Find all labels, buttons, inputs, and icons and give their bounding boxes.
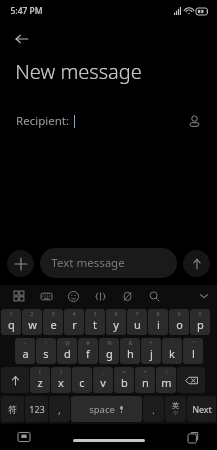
staticText: k bbox=[169, 346, 175, 361]
staticText: . bbox=[152, 402, 155, 417]
staticText: % bbox=[107, 339, 112, 346]
button[interactable]: space bbox=[71, 396, 142, 422]
button[interactable]: Choose contact bbox=[183, 110, 205, 132]
staticText: c bbox=[79, 375, 85, 390]
button[interactable]: Keyboard layout bbox=[33, 285, 60, 307]
staticText: , bbox=[58, 402, 61, 417]
staticText: 4 bbox=[72, 310, 76, 317]
button[interactable]: _ bbox=[93, 367, 113, 393]
button[interactable]: ! bbox=[36, 338, 56, 364]
staticText: 123 bbox=[29, 403, 45, 415]
staticText: 8 bbox=[156, 310, 160, 317]
staticText: 1 bbox=[9, 310, 13, 317]
button[interactable]: 符 bbox=[1, 396, 24, 422]
button[interactable]: 123 bbox=[25, 396, 48, 422]
button[interactable]: ( bbox=[30, 367, 50, 393]
button[interactable]: Text editing bbox=[87, 285, 114, 307]
button[interactable]: Collapse bbox=[191, 285, 217, 307]
staticText: n bbox=[142, 375, 149, 390]
button[interactable]: Next bbox=[187, 396, 216, 422]
staticText: z bbox=[37, 375, 43, 390]
button[interactable]: Clipboard bbox=[114, 285, 141, 307]
button[interactable]: Send bbox=[183, 250, 210, 277]
staticText: ~ bbox=[23, 339, 27, 346]
button[interactable]: 3 bbox=[43, 309, 63, 335]
staticText: Next bbox=[192, 403, 212, 415]
button[interactable]: + bbox=[135, 367, 155, 393]
staticText: s bbox=[43, 346, 49, 361]
staticText: b bbox=[121, 375, 128, 390]
staticText: 0 bbox=[198, 310, 202, 317]
button[interactable]: & bbox=[120, 338, 140, 364]
staticText: 9 bbox=[177, 310, 181, 317]
staticText: a bbox=[22, 346, 29, 361]
button[interactable]: Search bbox=[141, 285, 168, 307]
button[interactable]: , bbox=[49, 396, 70, 422]
staticText: o bbox=[176, 317, 183, 332]
button[interactable]: Shift bbox=[1, 367, 29, 393]
button[interactable]: Text message bbox=[40, 248, 177, 278]
staticText: m bbox=[161, 375, 172, 390]
button[interactable]: 1 bbox=[1, 309, 21, 335]
button[interactable]: 4 bbox=[64, 309, 84, 335]
button[interactable]: Apps bbox=[6, 285, 33, 307]
button[interactable]: 8 bbox=[148, 309, 168, 335]
staticText: h bbox=[127, 346, 134, 361]
staticText: e bbox=[50, 317, 57, 332]
button[interactable]: Backspace bbox=[177, 367, 205, 393]
staticText: t bbox=[93, 317, 97, 332]
button[interactable]: Back bbox=[9, 26, 35, 52]
staticText: * bbox=[149, 339, 153, 346]
button[interactable]: 6 bbox=[106, 309, 126, 335]
staticText: x bbox=[58, 375, 64, 390]
staticText: - bbox=[81, 368, 83, 375]
staticText: 7 bbox=[135, 310, 139, 317]
staticText: w bbox=[28, 317, 37, 332]
button[interactable]: = bbox=[114, 367, 134, 393]
button[interactable]: Hide keyboard bbox=[14, 427, 34, 447]
button[interactable]: Add attachment bbox=[7, 250, 34, 277]
button[interactable]: 5 bbox=[85, 309, 105, 335]
button[interactable]: * bbox=[141, 338, 161, 364]
button[interactable]: Switch language bbox=[165, 396, 186, 422]
staticText: u bbox=[134, 317, 141, 332]
button[interactable]: / bbox=[156, 367, 176, 393]
staticText: ! bbox=[45, 339, 47, 346]
button[interactable]: " bbox=[183, 338, 203, 364]
staticText: + bbox=[143, 368, 147, 375]
staticText: New message bbox=[15, 58, 142, 85]
staticText: p bbox=[197, 317, 204, 332]
staticText: = bbox=[122, 368, 126, 375]
staticText: l bbox=[192, 346, 195, 361]
staticText: 中 bbox=[173, 410, 179, 417]
button[interactable]: . bbox=[143, 396, 164, 422]
staticText: ' bbox=[171, 339, 173, 346]
button[interactable]: ~ bbox=[15, 338, 35, 364]
button[interactable]: Recipient: bbox=[0, 107, 217, 135]
button[interactable]: ' bbox=[162, 338, 182, 364]
staticText: 5:47 PM bbox=[10, 5, 43, 17]
staticText: 5 bbox=[93, 310, 97, 317]
button[interactable]: # bbox=[78, 338, 98, 364]
button[interactable]: Recent apps bbox=[183, 427, 203, 447]
staticText: space bbox=[89, 403, 115, 416]
button[interactable]: 2 bbox=[22, 309, 42, 335]
button[interactable]: ) bbox=[51, 367, 71, 393]
button[interactable]: @ bbox=[57, 338, 77, 364]
button[interactable]: - bbox=[72, 367, 92, 393]
staticText: Text message bbox=[51, 255, 125, 271]
button[interactable]: 9 bbox=[169, 309, 189, 335]
staticText: " bbox=[192, 339, 195, 346]
button[interactable]: Emoji bbox=[60, 285, 87, 307]
staticText: v bbox=[100, 375, 106, 390]
staticText: _ bbox=[102, 368, 105, 375]
staticText: 2 bbox=[30, 310, 34, 317]
button[interactable]: % bbox=[99, 338, 119, 364]
staticText: @ bbox=[65, 339, 70, 346]
button[interactable]: 7 bbox=[127, 309, 147, 335]
button[interactable]: Home bbox=[73, 439, 145, 442]
staticText: # bbox=[86, 339, 90, 346]
button[interactable]: 0 bbox=[190, 309, 210, 335]
staticText: r bbox=[72, 317, 77, 332]
staticText: j bbox=[150, 346, 153, 361]
